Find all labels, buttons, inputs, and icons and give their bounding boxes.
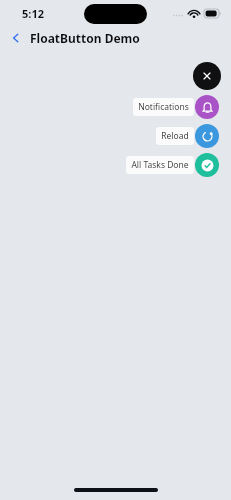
- button[interactable]: Back: [6, 28, 26, 48]
- button[interactable]: Notifications: [195, 95, 219, 119]
- staticText: Reload: [161, 130, 189, 142]
- button[interactable]: Close menu: [193, 62, 221, 90]
- staticText: FloatButton Demo: [30, 30, 140, 46]
- button[interactable]: Reload: [195, 124, 219, 148]
- button[interactable]: All Tasks Done: [126, 156, 194, 174]
- staticText: Notifications: [138, 101, 189, 113]
- button[interactable]: Reload: [156, 127, 194, 145]
- button[interactable]: Notifications: [133, 98, 194, 116]
- staticText: 5:12: [22, 6, 44, 21]
- staticText: All Tasks Done: [131, 159, 189, 171]
- button[interactable]: All Tasks Done: [195, 153, 219, 177]
